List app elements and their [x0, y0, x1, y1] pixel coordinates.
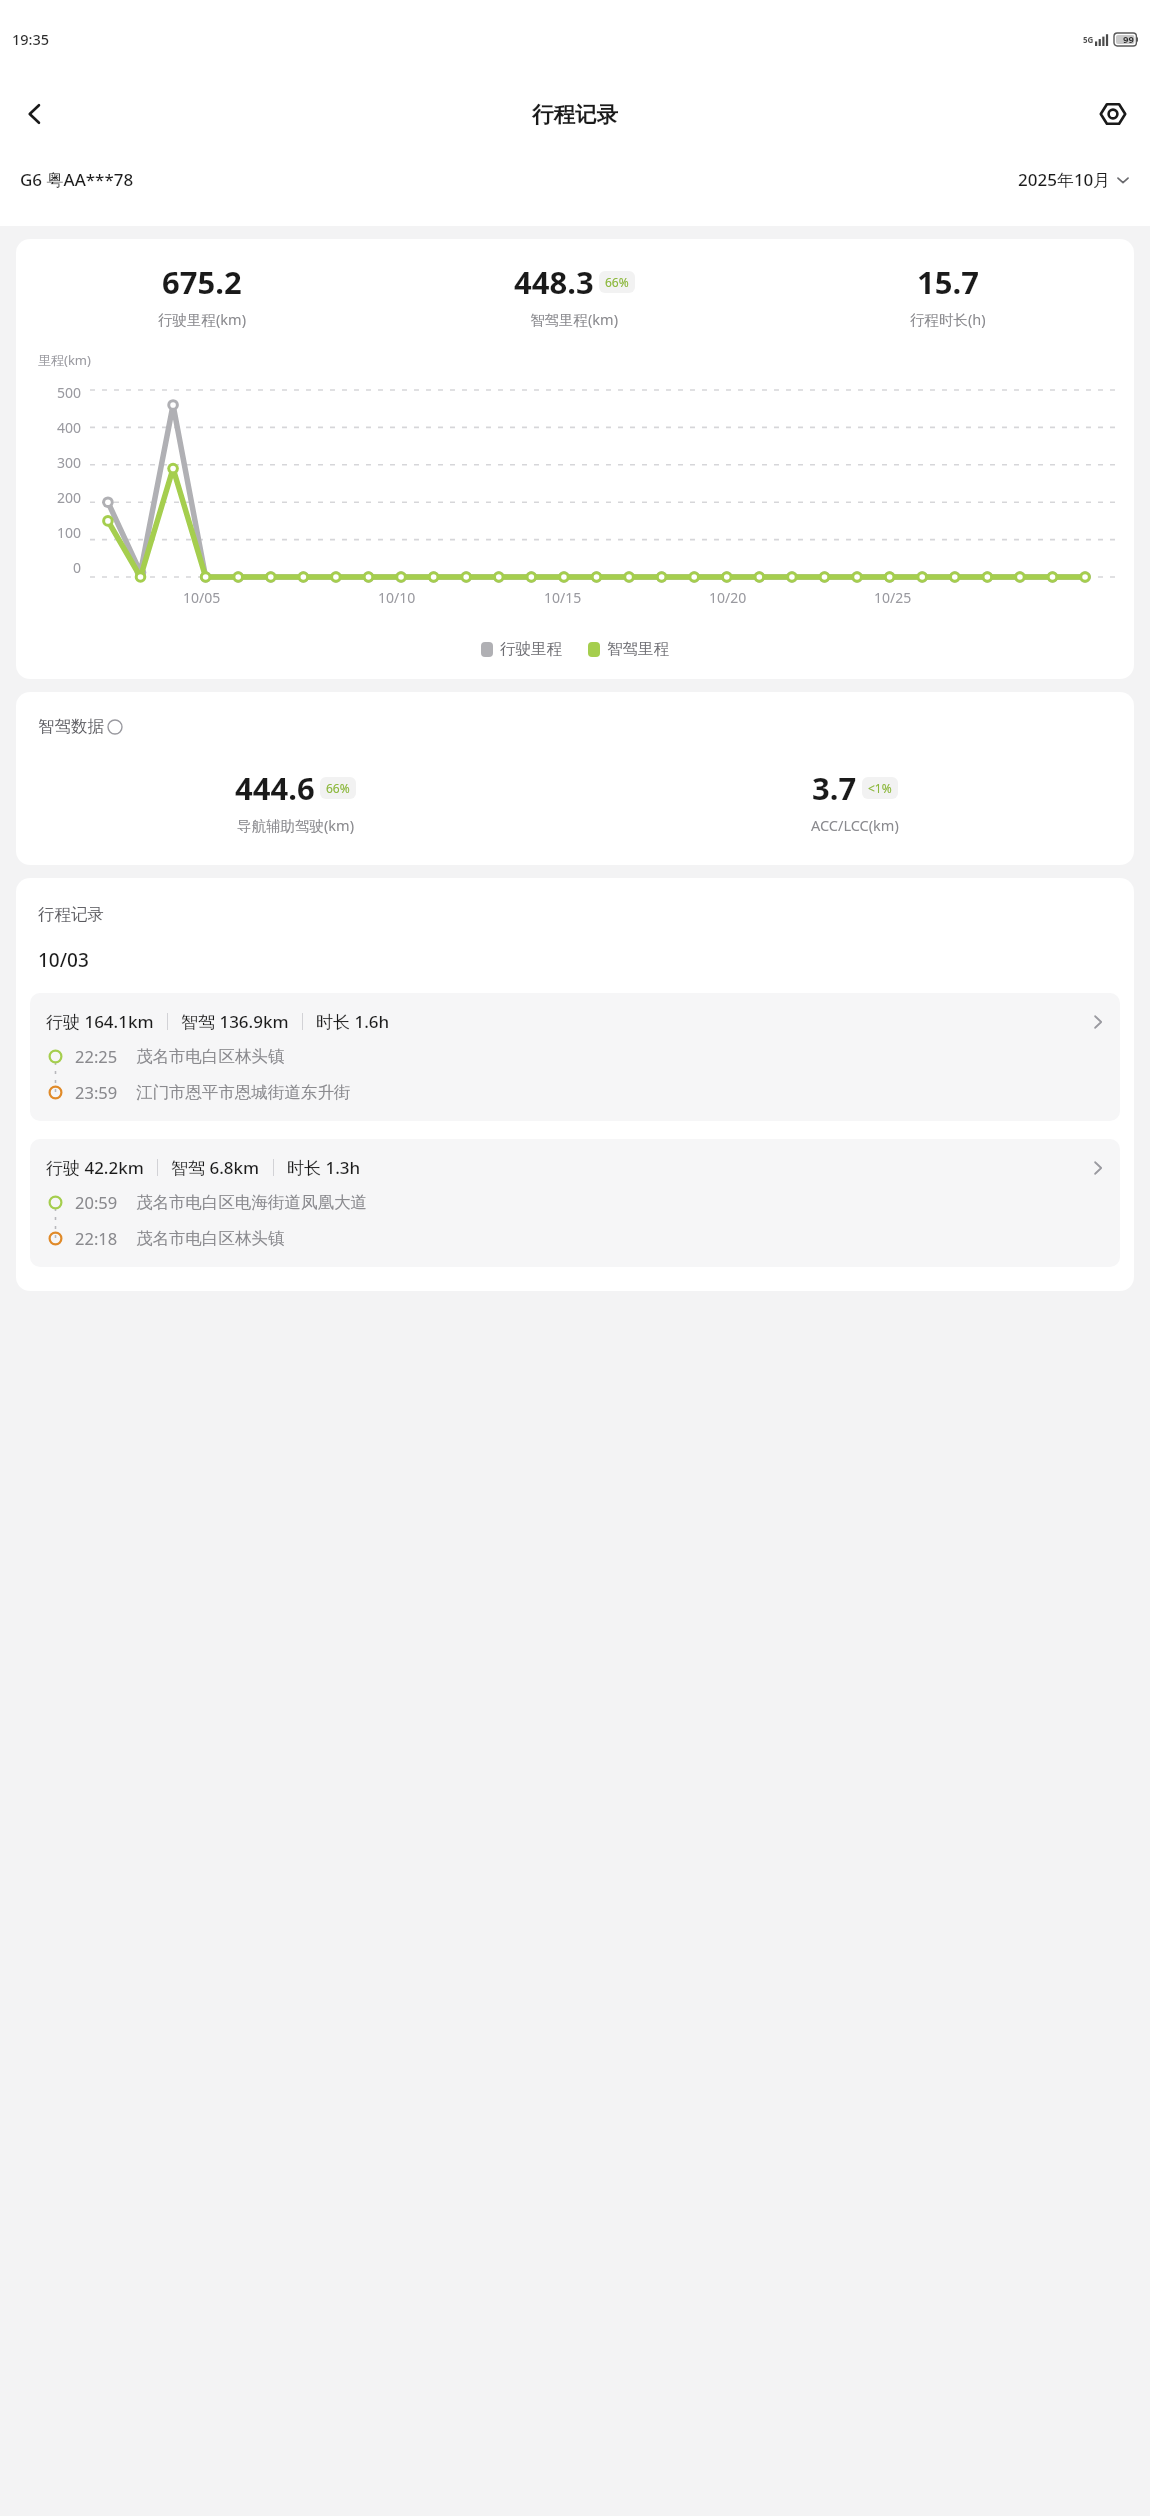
staticText: 22:25	[75, 1045, 118, 1067]
staticText: 99	[1123, 33, 1134, 46]
staticText: 行程记录	[38, 904, 104, 925]
staticText: 10/03	[38, 947, 89, 973]
staticText: 智驾里程	[607, 639, 669, 659]
staticText: 0	[73, 558, 82, 577]
staticText: 400	[57, 418, 82, 437]
staticText: 行驶里程	[500, 639, 562, 659]
staticText: 茂名市电白区林头镇	[136, 1228, 285, 1249]
staticText: 江门市恩平市恩城街道东升街	[136, 1082, 351, 1103]
staticText: 智驾里程(km)	[530, 309, 619, 329]
staticText: 导航辅助驾驶(km)	[237, 815, 355, 835]
staticText: 行程时长(h)	[910, 309, 986, 329]
staticText: 20:59	[75, 1191, 118, 1213]
other: Help	[107, 719, 123, 735]
staticText: 444.6	[235, 767, 315, 809]
staticText: 19:35	[12, 29, 50, 49]
staticText: 5G	[1083, 34, 1094, 45]
staticText: 66%	[326, 780, 350, 796]
staticText: 10/05	[183, 588, 221, 607]
button[interactable]: Settings	[1086, 87, 1140, 141]
staticText: 23:59	[75, 1081, 118, 1103]
staticText: 智驾 6.8km	[171, 1156, 260, 1179]
staticText: 300	[57, 453, 82, 472]
button[interactable]: 行驶 164.1km	[30, 993, 1120, 1121]
staticText: G6 粤AA***78	[20, 168, 134, 191]
staticText: <1%	[868, 780, 892, 796]
button[interactable]: G6 粤AA***78	[20, 168, 134, 191]
staticText: 里程(km)	[38, 351, 91, 369]
button[interactable]: 智驾数据	[38, 716, 123, 737]
button[interactable]: 智驾里程	[588, 639, 669, 659]
staticText: 时长 1.6h	[316, 1010, 390, 1033]
button[interactable]: 2025年10月	[1018, 164, 1130, 195]
staticText: 200	[57, 488, 82, 507]
staticText: 15.7	[917, 261, 979, 303]
staticText: 2025年10月	[1018, 168, 1111, 191]
staticText: 时长 1.3h	[287, 1156, 361, 1179]
button[interactable]: 行驶里程	[481, 639, 562, 659]
staticText: 100	[57, 523, 82, 542]
staticText: 茂名市电白区林头镇	[136, 1046, 285, 1067]
staticText: 10/15	[544, 588, 582, 607]
staticText: ACC/LCC(km)	[811, 815, 899, 835]
staticText: 448.3	[514, 261, 594, 303]
staticText: 智驾 136.9km	[181, 1010, 289, 1033]
staticText: 行程记录	[532, 101, 618, 128]
staticText: 10/10	[378, 588, 416, 607]
button[interactable]: 行驶 42.2km	[30, 1139, 1120, 1267]
staticText: 22:18	[75, 1227, 118, 1249]
staticText: 10/20	[709, 588, 747, 607]
staticText: 66%	[605, 274, 629, 290]
staticText: 智驾数据	[38, 716, 104, 737]
button[interactable]: Back	[8, 87, 62, 141]
staticText: 500	[57, 383, 82, 402]
staticText: 3.7	[812, 767, 857, 809]
staticText: 行驶里程(km)	[158, 309, 247, 329]
staticText: 行驶 42.2km	[46, 1156, 144, 1179]
staticText: 行驶 164.1km	[46, 1010, 154, 1033]
staticText: 675.2	[162, 261, 242, 303]
staticText: 茂名市电白区电海街道凤凰大道	[136, 1192, 367, 1213]
staticText: 10/25	[874, 588, 912, 607]
